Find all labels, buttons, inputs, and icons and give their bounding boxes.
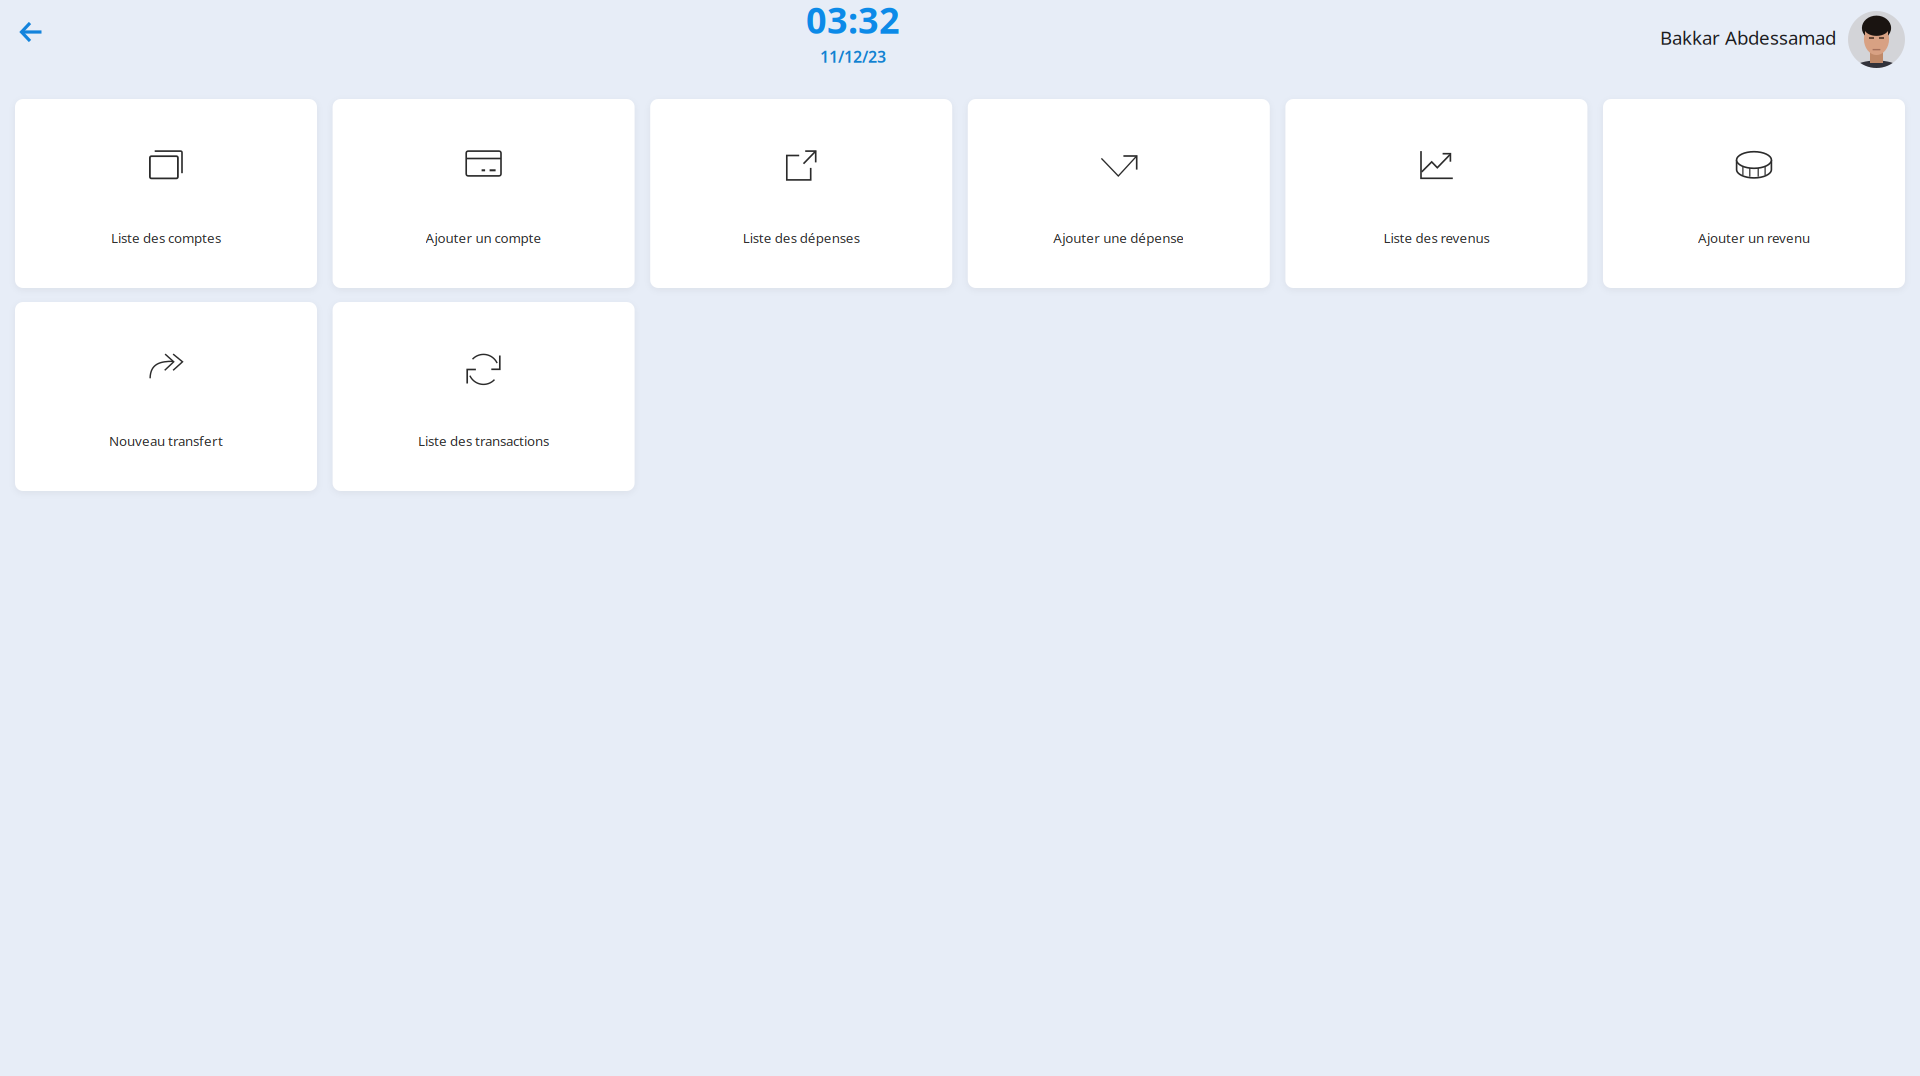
staticText: Ajouter une dépense (1053, 229, 1184, 247)
staticText: Ajouter un revenu (1698, 229, 1810, 247)
staticText: Liste des dépenses (743, 229, 860, 247)
button[interactable]: Profile (1848, 0, 1905, 99)
button[interactable]: Liste des dépenses (650, 99, 952, 288)
button[interactable]: Liste des revenus (1285, 99, 1587, 288)
staticText: Nouveau transfert (109, 432, 223, 450)
button[interactable]: Ajouter un revenu (1603, 99, 1905, 288)
staticText: Liste des comptes (111, 229, 221, 247)
button[interactable]: Nouveau transfert (15, 302, 317, 491)
button[interactable]: Ajouter une dépense (968, 99, 1270, 288)
button[interactable]: Back (0, 11, 59, 88)
button[interactable]: Ajouter un compte (333, 99, 635, 288)
staticText: Ajouter un compte (426, 229, 542, 247)
staticText: Liste des revenus (1383, 229, 1489, 247)
staticText: Bakkar Abdessamad (1660, 25, 1836, 50)
staticText: Liste des transactions (418, 432, 549, 450)
staticText: 03:32 (806, 0, 900, 44)
staticText: 11/12/23 (820, 46, 886, 67)
button[interactable]: Liste des transactions (333, 302, 635, 491)
button[interactable]: Liste des comptes (15, 99, 317, 288)
